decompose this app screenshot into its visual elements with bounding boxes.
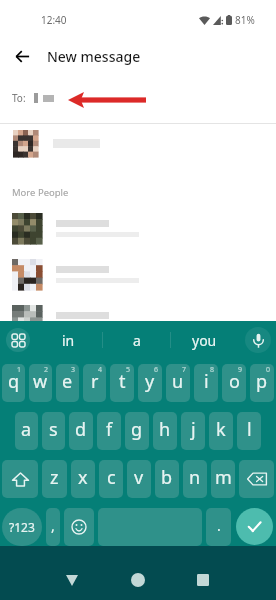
staticText: z — [50, 465, 59, 490]
button[interactable]: Recent apps — [181, 558, 225, 600]
staticText: 4 — [98, 365, 103, 375]
staticText: 1 — [17, 365, 22, 375]
staticText: r — [91, 369, 99, 394]
button[interactable]: Voice input — [245, 327, 271, 353]
staticText: u — [172, 369, 184, 394]
button[interactable]: j — [181, 412, 205, 450]
staticText: 12:40 — [41, 13, 67, 27]
button[interactable]: i — [194, 364, 218, 402]
button[interactable]: w — [29, 364, 52, 402]
staticText: k — [216, 417, 226, 442]
button[interactable]: k — [209, 412, 233, 450]
staticText: t — [119, 369, 126, 394]
staticText: w — [33, 369, 48, 394]
button[interactable]: Home — [116, 558, 160, 600]
button[interactable] — [0, 297, 276, 343]
button[interactable]: Backspace — [239, 460, 274, 498]
staticText: a — [21, 417, 32, 442]
staticText: i — [204, 369, 209, 394]
staticText: 3 — [71, 365, 76, 375]
staticText: e — [62, 369, 73, 394]
button[interactable]: n — [183, 460, 207, 498]
button[interactable]: h — [153, 412, 177, 450]
button[interactable]: l — [237, 412, 261, 450]
staticText: f — [106, 417, 113, 442]
staticText: g — [131, 417, 143, 442]
staticText: c — [107, 465, 116, 490]
other: Shift — [2, 460, 38, 498]
button[interactable]: Shift — [2, 460, 38, 498]
staticText: h — [159, 417, 171, 442]
other: Backspace — [239, 460, 274, 498]
button[interactable]: Back — [50, 558, 94, 600]
staticText: you — [192, 331, 217, 350]
button[interactable]: . — [206, 508, 231, 546]
button[interactable]: ?123 — [2, 508, 42, 546]
button[interactable]: you — [171, 321, 237, 359]
button[interactable]: m — [211, 460, 235, 498]
button[interactable]: c — [99, 460, 123, 498]
staticText: q — [8, 369, 20, 394]
other: Emoji — [71, 519, 87, 535]
staticText: 9 — [238, 365, 243, 375]
staticText: a — [133, 331, 141, 350]
button[interactable]: Emoji — [64, 508, 94, 546]
button[interactable]: y — [138, 364, 162, 402]
button[interactable]: g — [125, 412, 149, 450]
staticText: p — [256, 369, 268, 394]
staticText: o — [229, 369, 240, 394]
staticText: . — [217, 516, 221, 535]
button[interactable]: t — [110, 364, 134, 402]
staticText: x — [78, 465, 88, 490]
button[interactable]: Back — [0, 31, 44, 79]
staticText: b — [161, 465, 173, 490]
staticText: 0 — [266, 365, 271, 375]
staticText: y — [145, 369, 155, 394]
staticText: n — [189, 465, 201, 490]
staticText: 2 — [44, 365, 49, 375]
staticText: d — [75, 417, 87, 442]
button[interactable]: v — [127, 460, 151, 498]
staticText: 8 — [210, 365, 215, 375]
staticText: s — [49, 417, 58, 442]
staticText: To: — [12, 91, 26, 105]
button[interactable]: Send — [236, 508, 273, 545]
staticText: More People — [12, 186, 69, 199]
button[interactable]: x — [71, 460, 95, 498]
button[interactable]: z — [42, 460, 67, 498]
button[interactable]: f — [97, 412, 121, 450]
button[interactable]: p — [250, 364, 274, 402]
button[interactable]: in — [34, 321, 102, 359]
staticText: 5 — [126, 365, 131, 375]
button[interactable]: a — [103, 321, 170, 359]
button[interactable] — [0, 205, 276, 251]
button[interactable]: d — [69, 412, 93, 450]
button[interactable]: u — [166, 364, 190, 402]
staticText: in — [62, 331, 75, 350]
button[interactable]: o — [222, 364, 246, 402]
staticText: 6 — [154, 365, 159, 375]
staticText: j — [191, 417, 196, 442]
staticText: 81% — [235, 13, 255, 27]
button[interactable] — [0, 251, 276, 297]
button[interactable] — [0, 124, 276, 162]
button[interactable]: q — [2, 364, 25, 402]
staticText: ?123 — [9, 519, 35, 535]
staticText: v — [134, 465, 144, 490]
button[interactable]: a — [15, 412, 38, 450]
staticText: New message — [47, 47, 141, 66]
staticText: 7 — [182, 365, 187, 375]
staticText: , — [51, 516, 55, 535]
staticText: l — [247, 417, 252, 442]
button[interactable]: Keyboard options — [6, 328, 30, 352]
button[interactable]: b — [155, 460, 179, 498]
button[interactable]: r — [83, 364, 106, 402]
button[interactable]: e — [56, 364, 79, 402]
button[interactable]: s — [42, 412, 65, 450]
button[interactable]: , — [46, 508, 60, 546]
staticText: m — [215, 465, 232, 490]
